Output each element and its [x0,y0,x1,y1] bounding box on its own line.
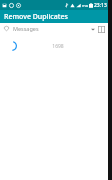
staticText: 23:13 [94,2,107,9]
button[interactable]: Select all [97,25,105,33]
button[interactable]: Show dropdown [90,25,96,33]
button[interactable]: Message type icon [3,25,10,32]
staticText: ma [82,3,88,8]
button[interactable]: Messages [13,25,90,32]
staticText: 1698 [52,43,64,50]
staticText: Remove Duplicates [4,12,68,22]
